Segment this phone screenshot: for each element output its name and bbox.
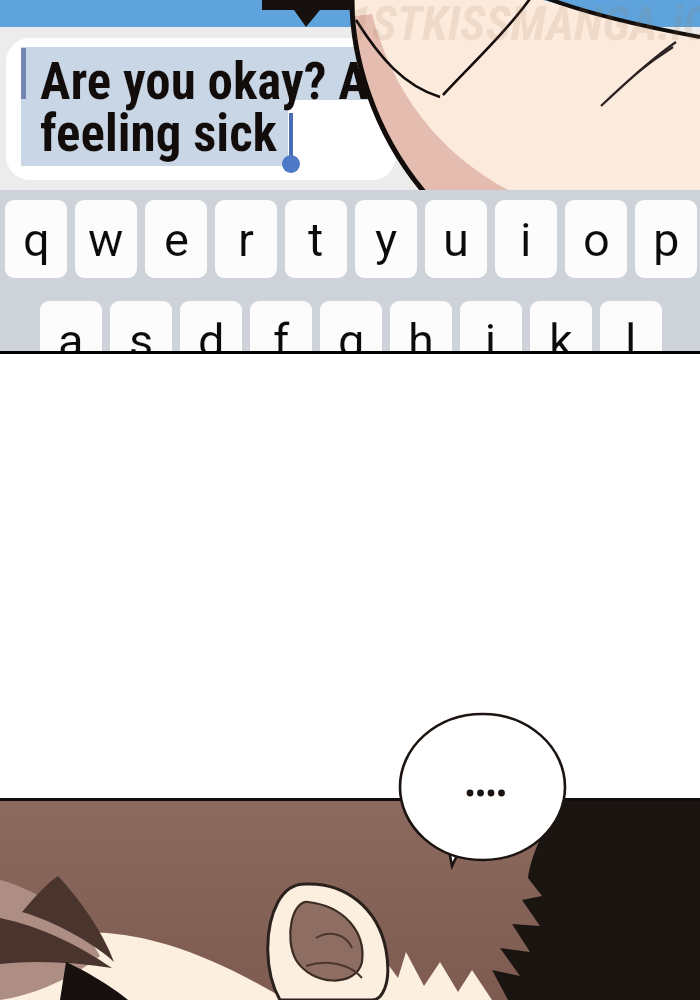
staticText: j (485, 313, 497, 351)
staticText: d (198, 313, 225, 351)
staticText: s (129, 313, 154, 351)
staticText: 1STKISSMANGA.iO (348, 0, 700, 51)
staticText: feeling sick (40, 104, 277, 164)
button[interactable]: i (495, 200, 557, 278)
staticText: r (238, 212, 254, 267)
staticText: t (308, 212, 324, 267)
button[interactable] (6, 38, 396, 180)
button[interactable]: u (425, 200, 487, 278)
button[interactable]: o (565, 200, 627, 278)
staticText: k (549, 313, 573, 351)
staticText: i (520, 212, 532, 267)
staticText: h (408, 313, 434, 351)
staticText: q (23, 212, 50, 267)
button[interactable]: f (250, 301, 312, 351)
button[interactable]: g (320, 301, 382, 351)
button[interactable]: q (5, 200, 67, 278)
button[interactable]: j (460, 301, 522, 351)
staticText: p (653, 212, 680, 267)
button[interactable]: h (390, 301, 452, 351)
button[interactable]: y (355, 200, 417, 278)
button[interactable]: p (635, 200, 697, 278)
button[interactable]: r (215, 200, 277, 278)
button[interactable]: e (145, 200, 207, 278)
staticText: e (164, 212, 189, 267)
staticText: o (583, 212, 610, 267)
button[interactable]: w (75, 200, 137, 278)
staticText: g (338, 313, 365, 351)
staticText: f (273, 313, 290, 351)
button[interactable]: a (40, 301, 102, 351)
staticText: y (375, 212, 398, 267)
staticText: a (58, 313, 84, 351)
button[interactable]: s (110, 301, 172, 351)
button[interactable]: l (600, 301, 662, 351)
button[interactable]: k (530, 301, 592, 351)
staticText: w (88, 212, 124, 267)
staticText: l (625, 313, 637, 351)
staticText: u (443, 212, 469, 267)
button[interactable]: t (285, 200, 347, 278)
button[interactable]: d (180, 301, 242, 351)
staticText: Are you okay? A (40, 52, 369, 112)
